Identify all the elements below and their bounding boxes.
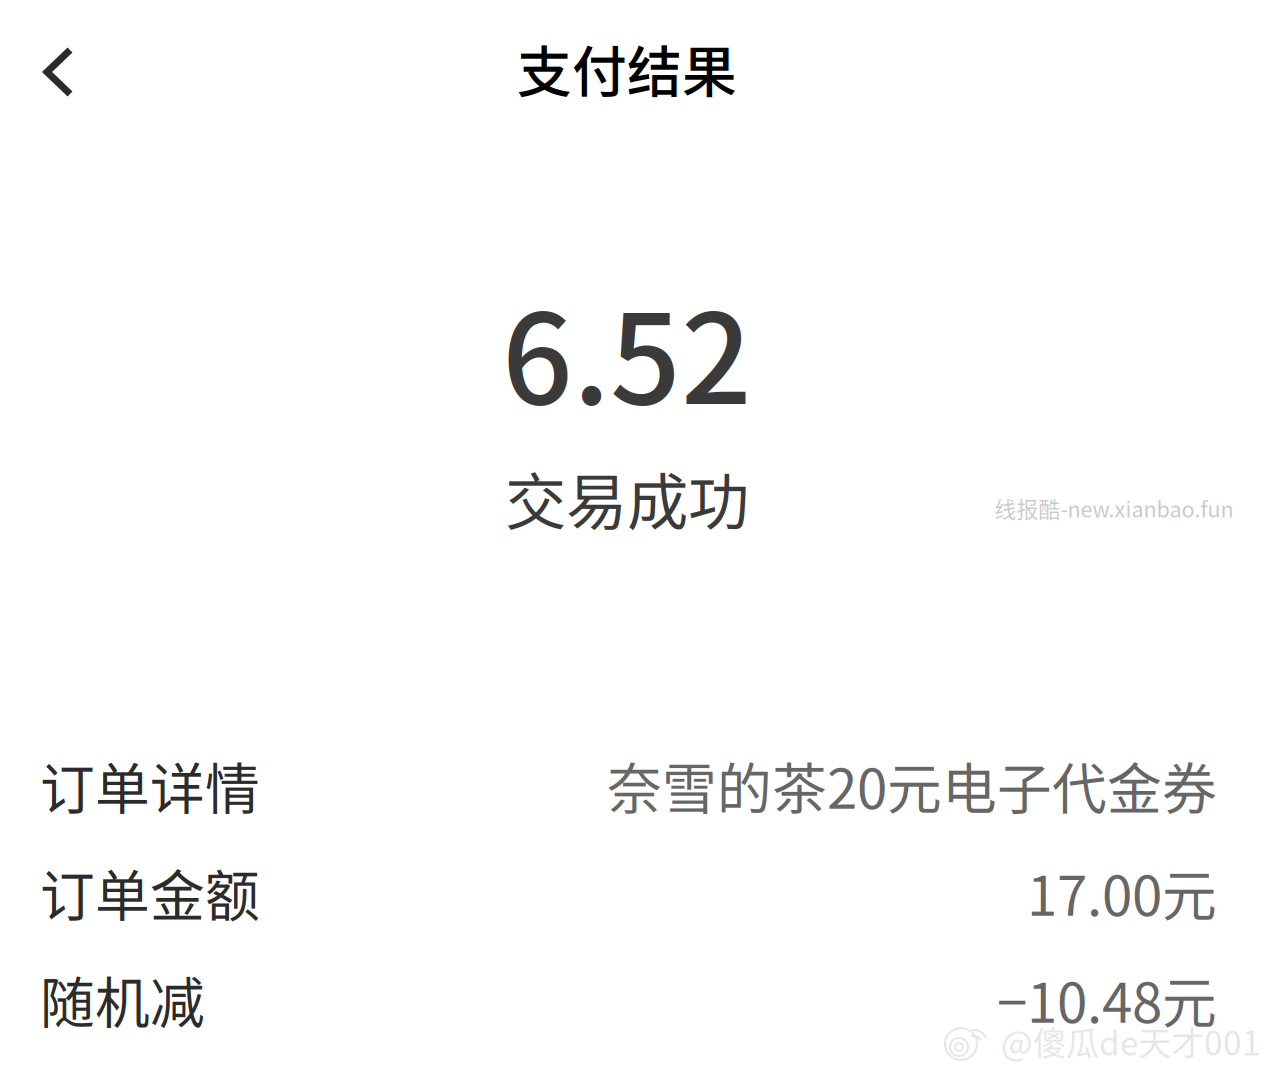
staticText: 6.52 <box>502 260 752 440</box>
staticText: 订单金额 <box>40 852 260 932</box>
button[interactable]: Back <box>4 16 114 128</box>
staticText: 交易成功 <box>505 454 749 542</box>
staticText: 17.00元 <box>1027 852 1217 932</box>
staticText: 支付结果 <box>517 28 737 108</box>
staticText: −10.48元 <box>997 959 1217 1039</box>
staticText: @傻瓜de天才001 <box>1001 1017 1261 1065</box>
staticText: 奈雪的茶20元电子代金券 <box>607 745 1217 825</box>
staticText: 线报酷-new.xianbao.fun <box>994 492 1233 524</box>
staticText: 随机减 <box>40 959 205 1039</box>
staticText: 订单详情 <box>40 745 260 825</box>
